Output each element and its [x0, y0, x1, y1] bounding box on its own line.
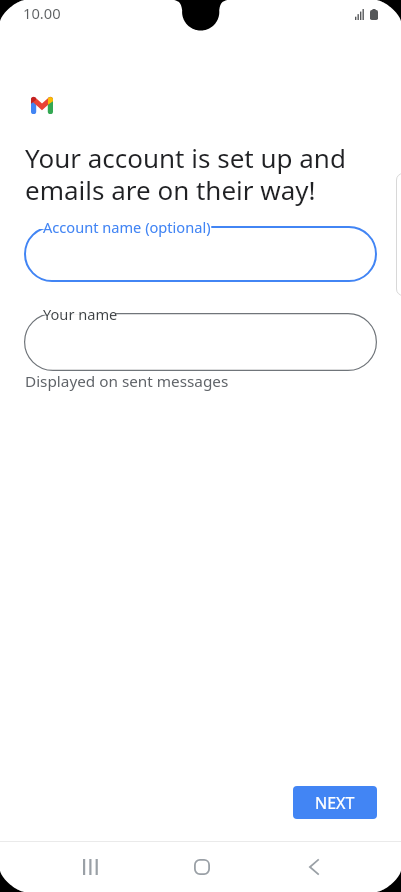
button[interactable]: [24, 226, 377, 282]
button[interactable]: Back: [280, 842, 348, 892]
button[interactable]: Home: [168, 842, 236, 892]
button[interactable]: NEXT: [293, 786, 377, 819]
staticText: Displayed on sent messages: [25, 371, 229, 392]
button[interactable]: [24, 313, 377, 371]
staticText: Your name: [43, 304, 118, 324]
staticText: Your account is set up and emails are on…: [25, 140, 357, 208]
staticText: Account name (optional): [43, 217, 211, 237]
staticText: 10.00: [23, 3, 61, 23]
staticText: NEXT: [315, 792, 355, 814]
button[interactable]: Recent apps: [56, 842, 124, 892]
